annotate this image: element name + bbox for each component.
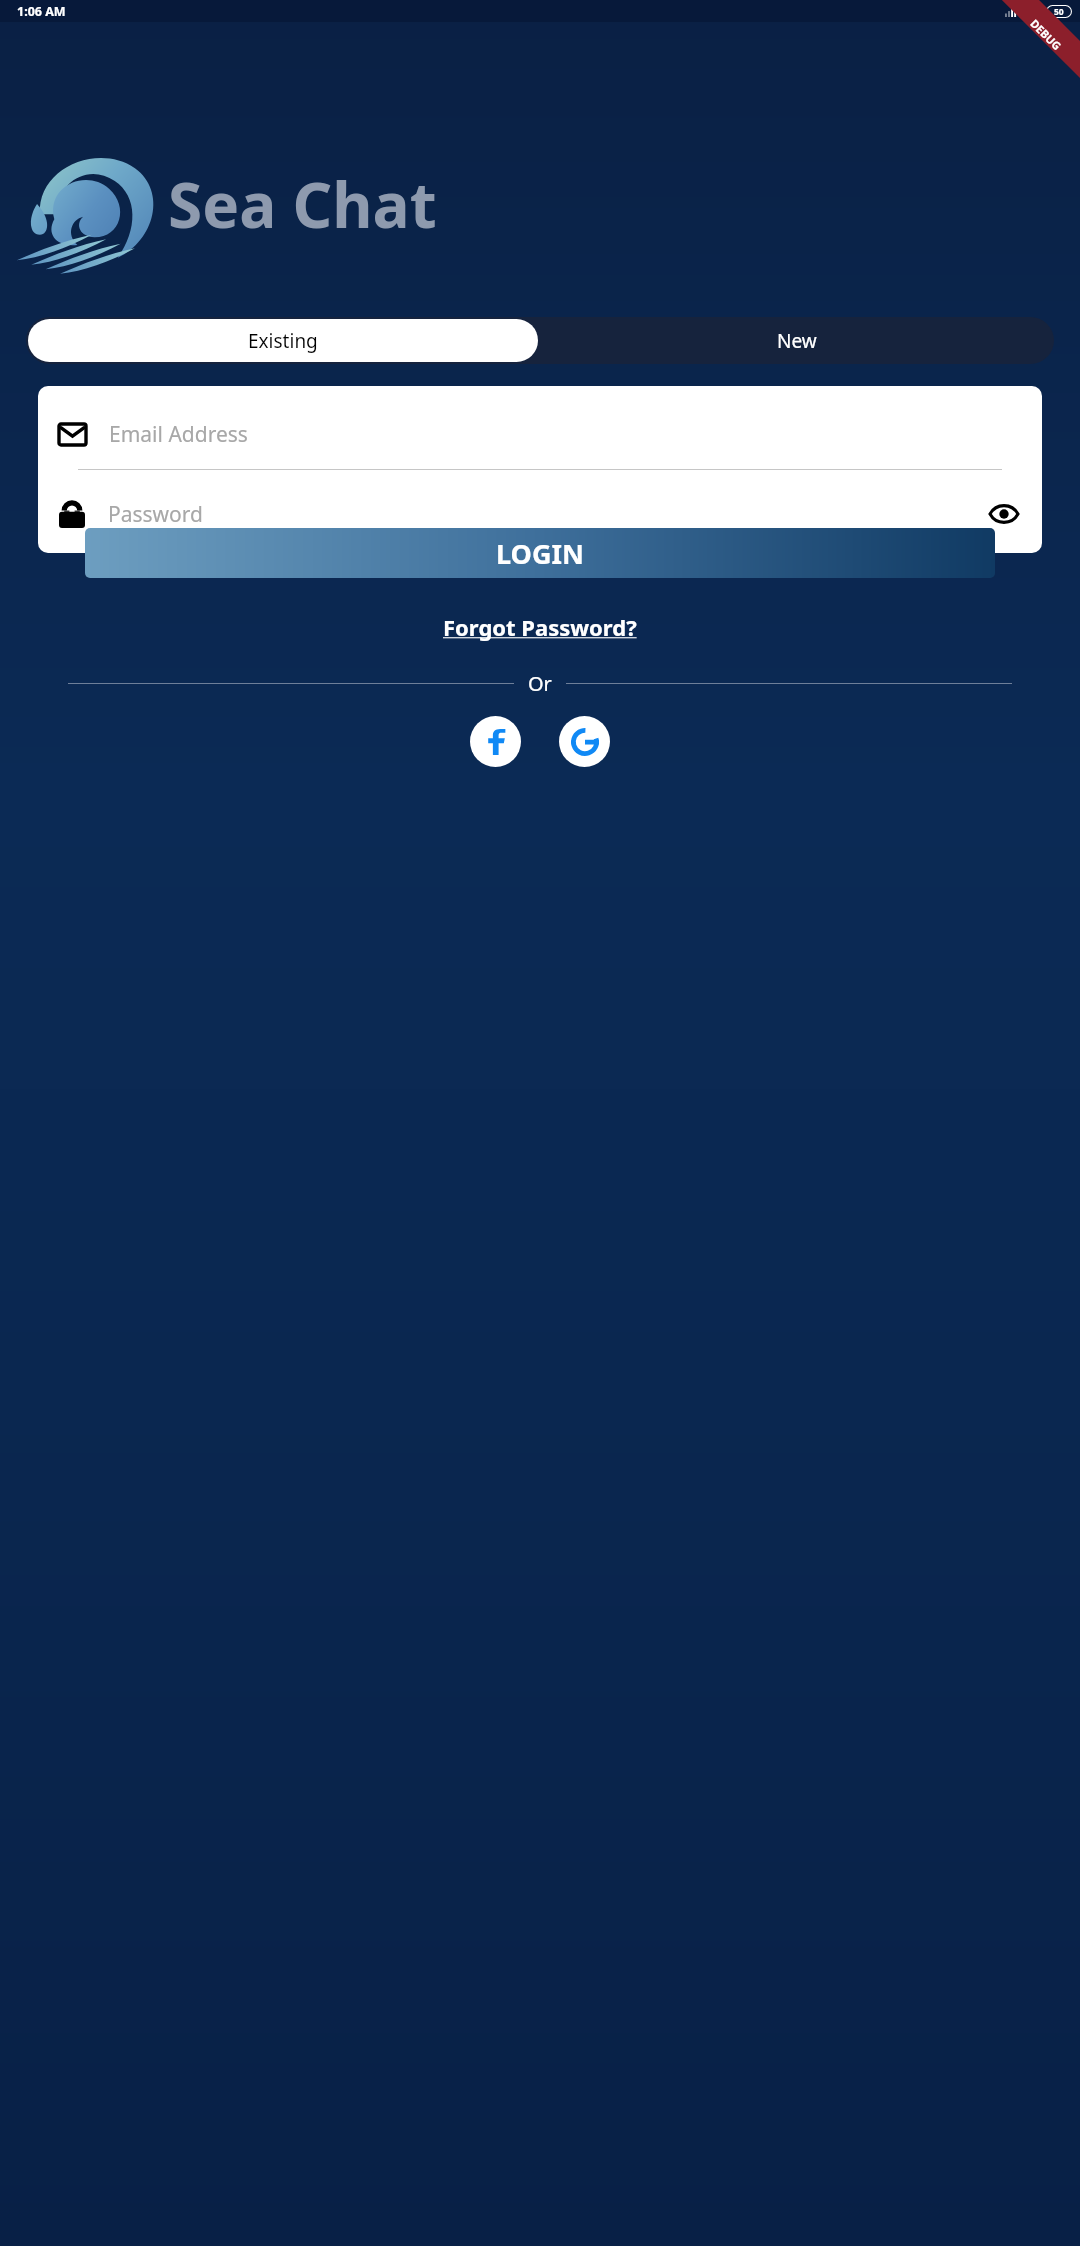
button[interactable]: Forgot Password?: [437, 606, 643, 648]
button[interactable]: Existing: [28, 319, 538, 362]
button[interactable]: Sign in with Facebook: [470, 716, 521, 767]
staticText: DEBUG: [1027, 16, 1065, 53]
staticText: 50: [1054, 6, 1064, 18]
staticText: Password: [108, 500, 987, 529]
staticText: New: [777, 328, 817, 354]
staticText: 1:06 AM: [17, 3, 66, 20]
staticText: Or: [528, 670, 552, 697]
button[interactable]: LOGIN: [85, 528, 995, 578]
staticText: LOGIN: [496, 535, 584, 572]
staticText: Existing: [248, 328, 318, 354]
staticText: Sea Chat: [168, 162, 437, 246]
button[interactable]: Email Address: [59, 414, 1021, 454]
button[interactable]: Password: [59, 494, 1021, 534]
button[interactable]: Sign in with Google: [559, 716, 610, 767]
button[interactable]: New: [540, 317, 1054, 364]
staticText: Forgot Password?: [443, 612, 637, 642]
button[interactable]: Show password: [987, 497, 1021, 531]
staticText: Email Address: [109, 420, 248, 449]
